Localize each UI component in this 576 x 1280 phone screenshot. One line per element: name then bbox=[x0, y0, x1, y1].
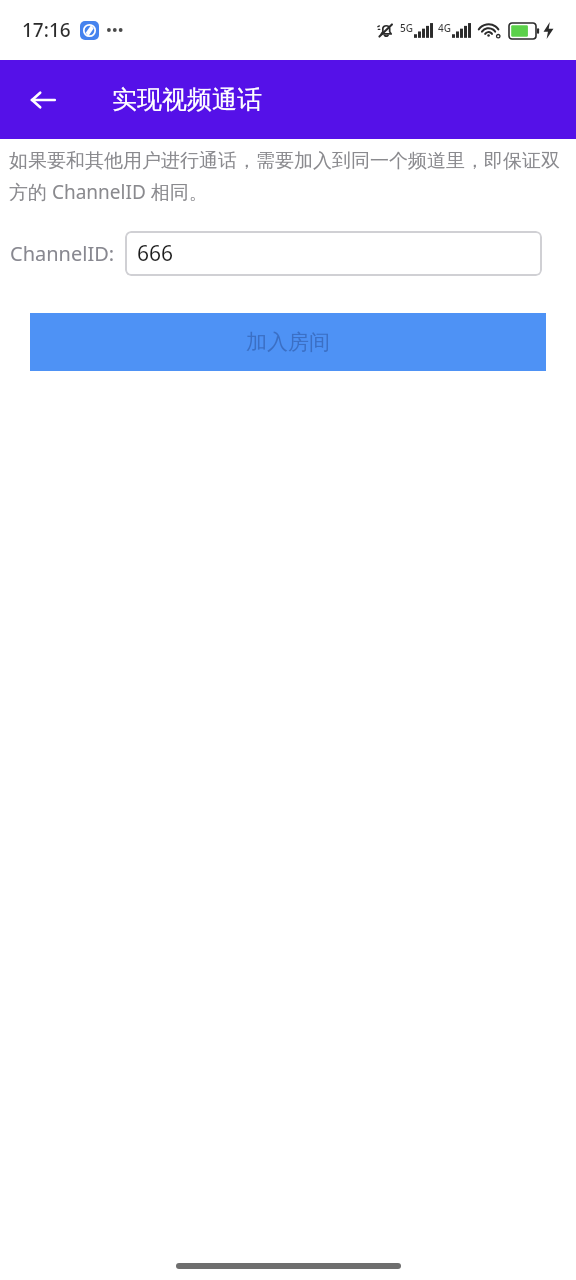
button[interactable]: 加入房间 bbox=[30, 313, 546, 371]
staticText: 加入房间 bbox=[246, 329, 330, 355]
staticText: 17:16 bbox=[22, 17, 71, 43]
button[interactable]: 返回 bbox=[18, 75, 68, 125]
staticText: 5G bbox=[400, 21, 413, 35]
staticText: 4G bbox=[438, 21, 451, 35]
staticText: 666 bbox=[137, 239, 174, 268]
staticText: ChannelID: bbox=[10, 240, 115, 267]
button[interactable]: 666 bbox=[125, 231, 542, 276]
staticText: 如果要和其他用户进行通话，需要加入到同一个频道里，即保证双方的 ChannelI… bbox=[9, 149, 570, 205]
staticText: 实现视频通话 bbox=[112, 84, 262, 115]
